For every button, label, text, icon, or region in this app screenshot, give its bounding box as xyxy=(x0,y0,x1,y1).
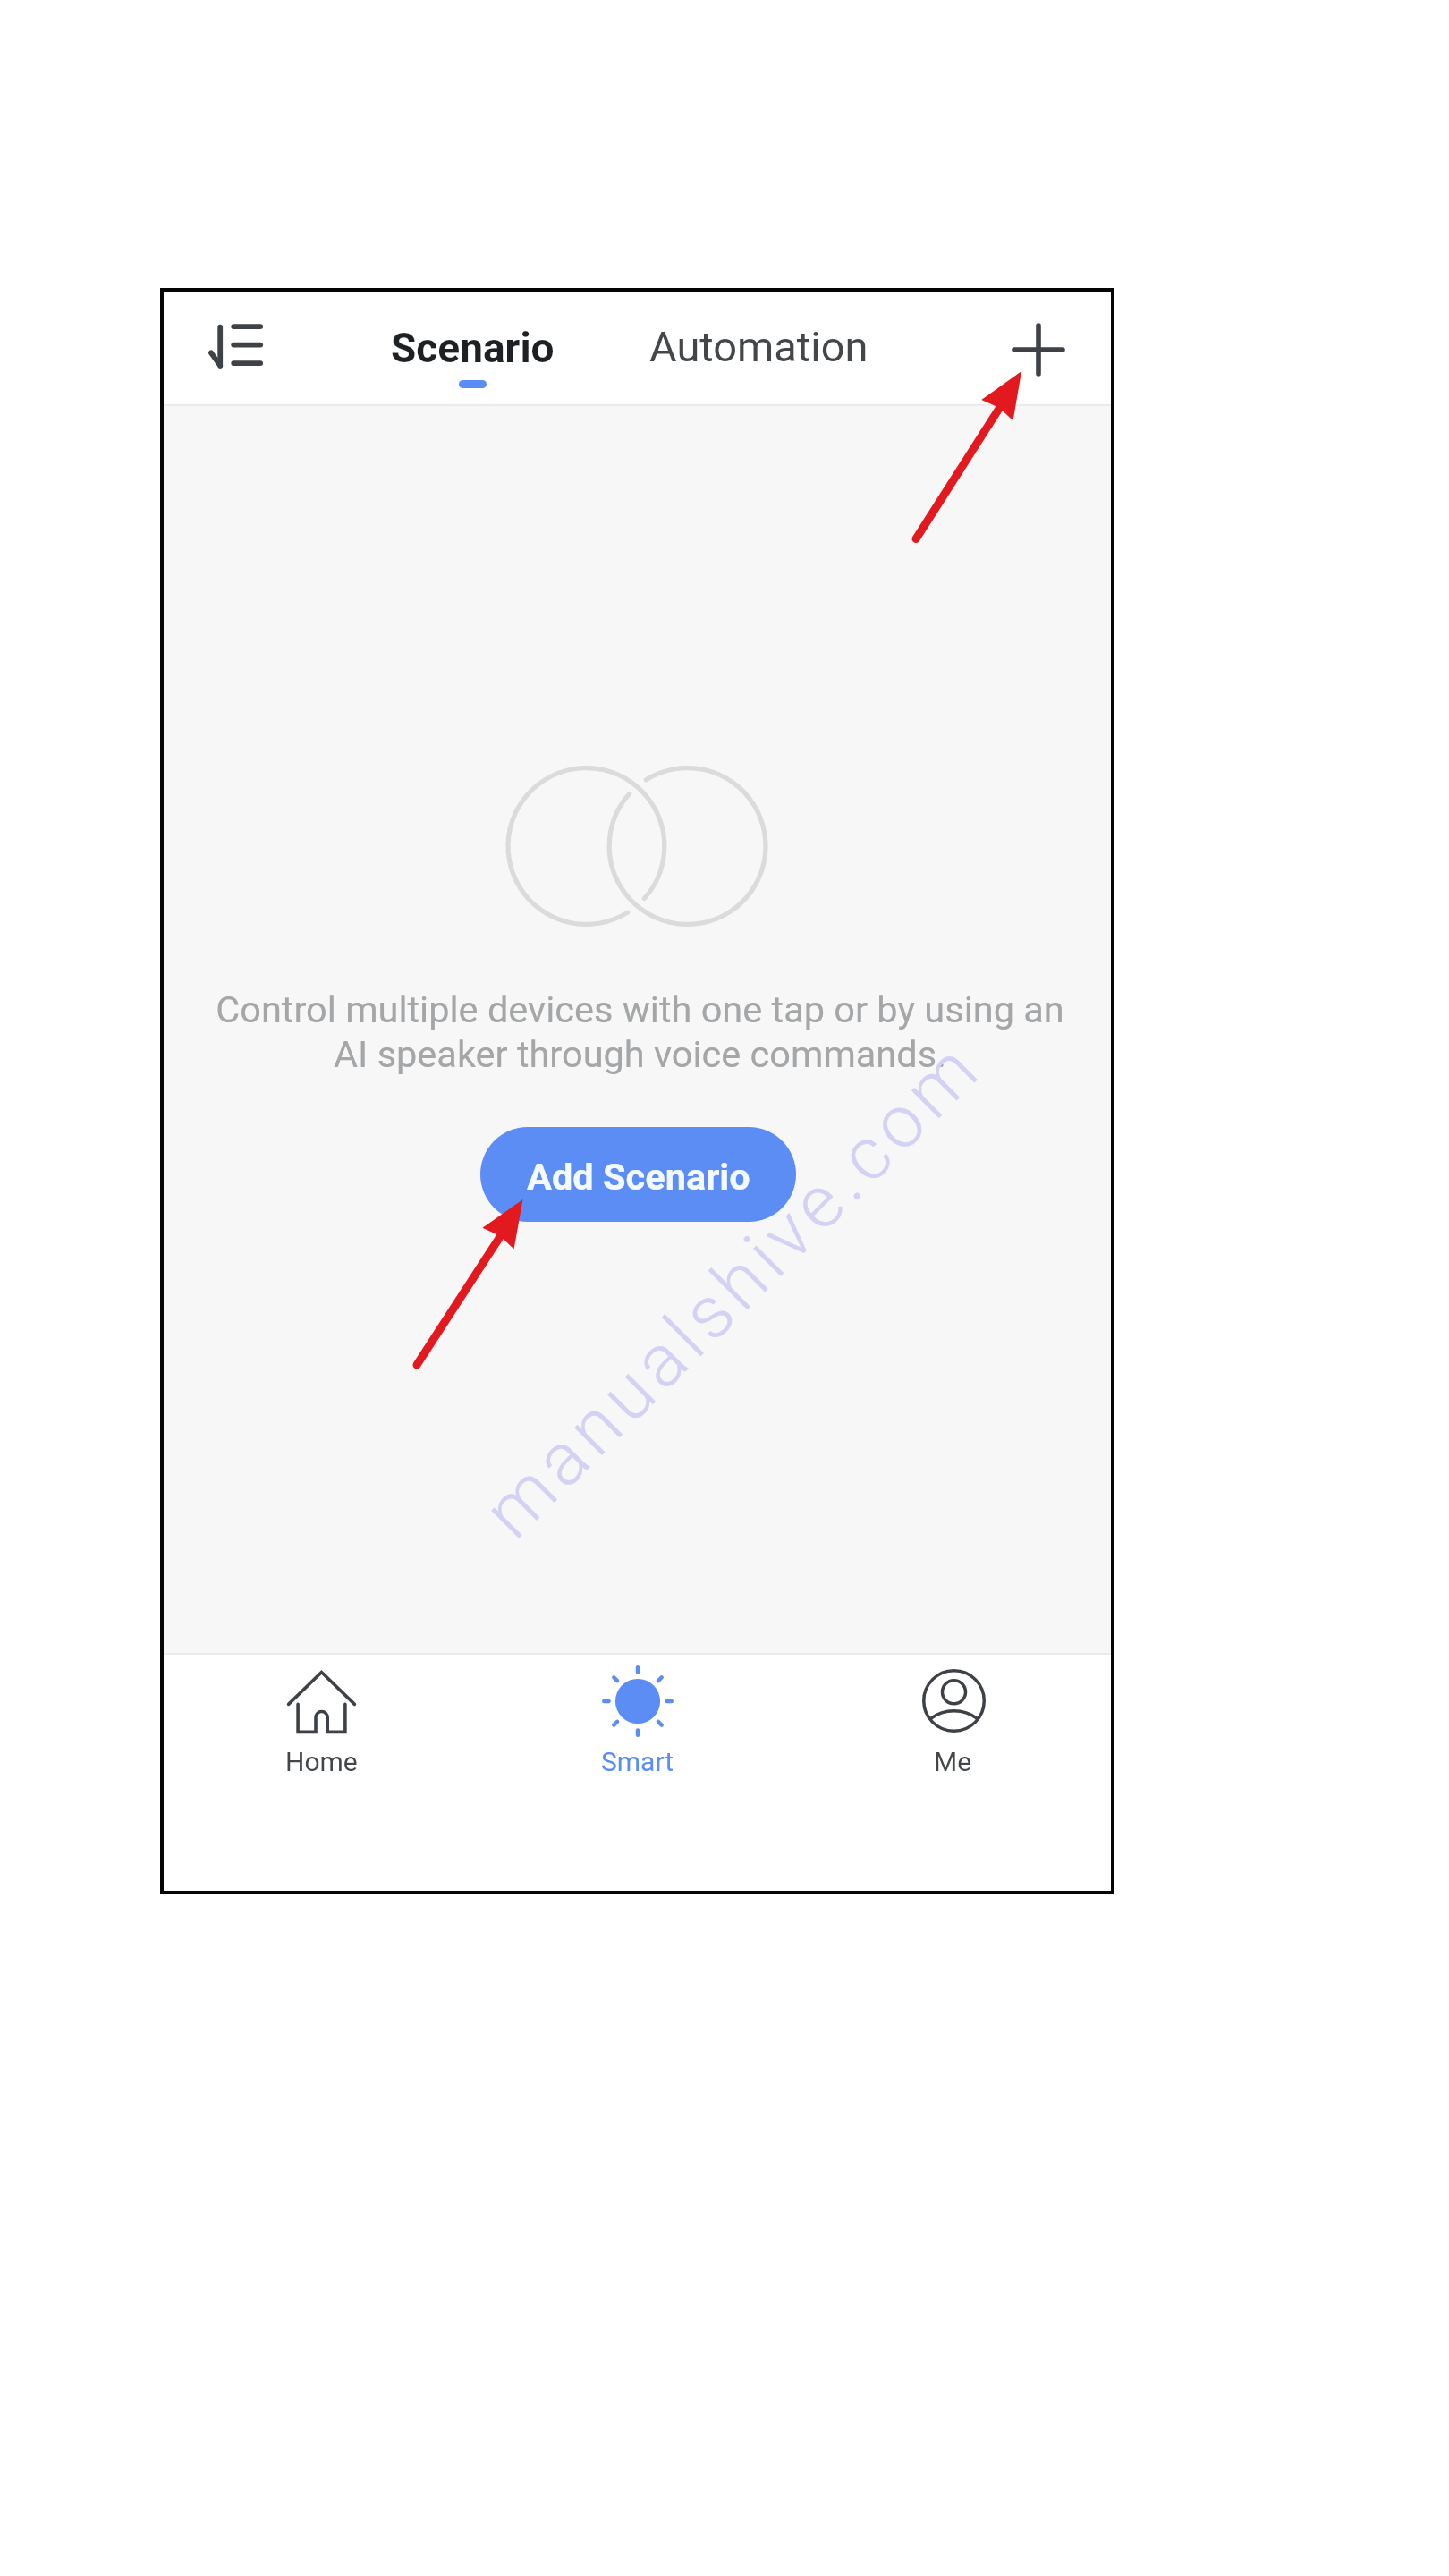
staticText: Smart xyxy=(601,1746,674,1777)
staticText: Automation xyxy=(649,322,869,371)
button[interactable]: Smart xyxy=(479,1653,795,1777)
button[interactable]: Home xyxy=(164,1653,479,1777)
staticText: Home xyxy=(285,1746,358,1777)
staticText: manualshive.com xyxy=(467,1023,999,1555)
button[interactable]: Sort xyxy=(164,292,285,399)
staticText: Add Scenario xyxy=(527,1155,750,1199)
button[interactable]: Add xyxy=(987,299,1089,401)
staticText: Me xyxy=(934,1746,972,1777)
button[interactable]: Scenario xyxy=(338,295,606,402)
button[interactable]: Automation xyxy=(611,295,906,402)
staticText: Scenario xyxy=(391,324,555,372)
button[interactable]: Me xyxy=(795,1653,1111,1777)
button[interactable]: Add Scenario xyxy=(480,1127,796,1222)
staticText: Control multiple devices with one tap or… xyxy=(166,987,1114,1076)
